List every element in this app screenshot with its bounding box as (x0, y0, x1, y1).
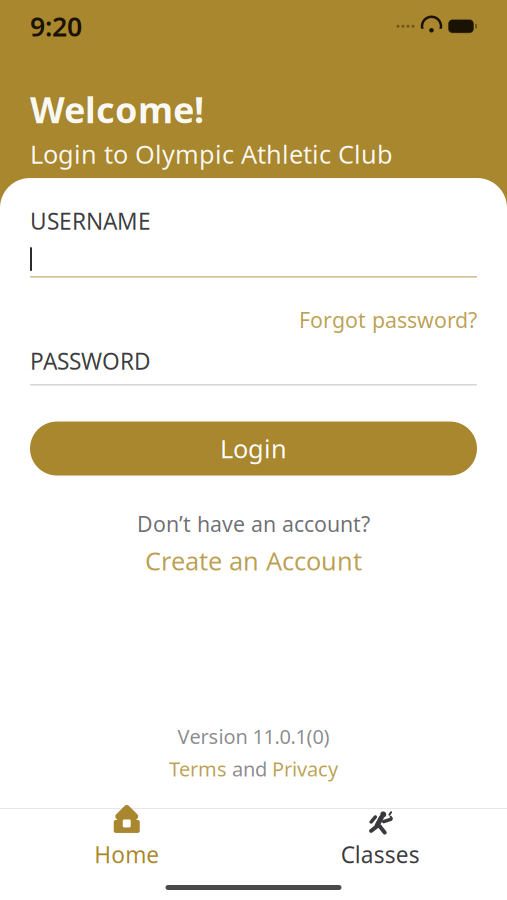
staticText: Forgot password? (299, 306, 477, 334)
staticText: Privacy (272, 755, 338, 782)
staticText: 9:20 (30, 9, 82, 44)
button[interactable]: Privacy (272, 755, 338, 782)
button[interactable]: Classes (253, 802, 507, 877)
button[interactable]: Login (30, 421, 477, 475)
staticText: PASSWORD (30, 346, 151, 376)
staticText: Version 11.0.1(0) (177, 723, 329, 749)
button[interactable]: Create an Account (137, 540, 370, 581)
staticText: Create an Account (145, 544, 362, 577)
staticText: USERNAME (30, 206, 151, 236)
button[interactable]: Terms (169, 755, 227, 782)
button[interactable]: Forgot password? (30, 278, 477, 340)
staticText: Classes (341, 839, 420, 869)
staticText: and (232, 755, 267, 782)
staticText: Home (94, 839, 159, 869)
staticText: Login to Olympic Athletic Club (30, 137, 393, 171)
staticText: Terms (169, 755, 227, 782)
staticText: Login (220, 432, 287, 465)
staticText: Welcome! (30, 85, 204, 133)
staticText: Don’t have an account? (137, 509, 370, 538)
button[interactable]: Home (0, 802, 253, 877)
